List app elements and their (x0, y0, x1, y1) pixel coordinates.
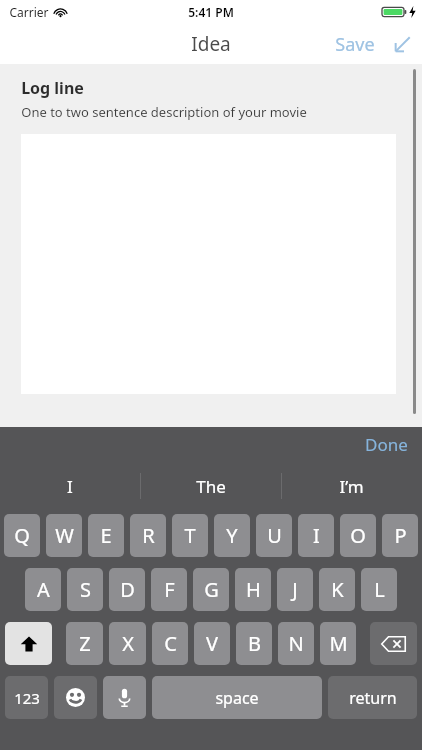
staticText: J (292, 576, 298, 603)
button[interactable]: E (88, 514, 124, 557)
staticText: I’m (339, 475, 364, 498)
button[interactable]: L (361, 568, 397, 611)
button[interactable]: space (152, 676, 322, 719)
staticText: Done (365, 433, 408, 456)
button[interactable]: A (25, 568, 61, 611)
button[interactable]: F (151, 568, 187, 611)
button[interactable]: return (328, 676, 417, 719)
button[interactable]: P (382, 514, 418, 557)
staticText: I (67, 475, 73, 498)
button[interactable]: S (67, 568, 103, 611)
staticText: I (313, 522, 320, 549)
staticText: R (142, 522, 155, 549)
staticText: P (394, 522, 407, 549)
button[interactable]: D (109, 568, 145, 611)
button[interactable]: Z (66, 622, 103, 665)
staticText: B (248, 630, 261, 657)
staticText: Q (14, 522, 30, 549)
staticText: One to two sentence description of your … (21, 103, 307, 121)
staticText: E (100, 522, 112, 549)
button[interactable]: N (278, 622, 314, 665)
button[interactable]: Q (4, 514, 40, 557)
staticText: D (120, 576, 135, 603)
staticText: return (349, 687, 397, 709)
staticText: F (164, 576, 175, 603)
button[interactable]: V (194, 622, 230, 665)
button[interactable]: Emoji (54, 676, 97, 719)
button[interactable]: X (109, 622, 146, 665)
staticText: X (122, 630, 134, 657)
button[interactable]: Backspace (370, 622, 417, 665)
staticText: Idea (191, 31, 231, 57)
button[interactable]: C (152, 622, 188, 665)
staticText: S (80, 576, 91, 603)
button[interactable]: J (277, 568, 313, 611)
staticText: U (267, 522, 282, 549)
staticText: K (331, 576, 344, 603)
button[interactable]: I (0, 462, 140, 510)
button[interactable]: T (172, 514, 208, 557)
button[interactable]: R (130, 514, 166, 557)
button[interactable]: Collapse (383, 29, 422, 60)
button[interactable]: G (193, 568, 229, 611)
staticText: V (206, 630, 218, 657)
button[interactable]: U (256, 514, 292, 557)
staticText: L (374, 576, 385, 603)
button[interactable]: M (320, 622, 356, 665)
button[interactable]: K (319, 568, 355, 611)
button[interactable]: O (340, 514, 376, 557)
button[interactable]: Save (327, 26, 383, 63)
button[interactable]: B (236, 622, 272, 665)
button[interactable]: I (298, 514, 334, 557)
button[interactable]: I’m (281, 462, 422, 510)
staticText: O (350, 522, 366, 549)
staticText: M (329, 630, 348, 657)
button[interactable]: The (140, 462, 281, 510)
staticText: The (196, 475, 226, 498)
staticText: C (164, 630, 177, 657)
staticText: Log line (21, 77, 84, 99)
button[interactable]: H (235, 568, 271, 611)
staticText: N (288, 630, 304, 657)
button[interactable]: Done (351, 428, 422, 461)
staticText: A (37, 576, 50, 603)
button[interactable]: 123 (5, 676, 48, 719)
staticText: Save (335, 32, 375, 57)
staticText: Z (79, 630, 91, 657)
staticText: G (204, 576, 219, 603)
staticText: 123 (14, 688, 40, 708)
button[interactable]: Y (214, 514, 250, 557)
staticText: W (55, 522, 74, 549)
staticText: T (184, 522, 196, 549)
button[interactable]: Shift (5, 622, 52, 665)
staticText: Y (226, 522, 238, 549)
button[interactable]: Dictation (103, 676, 146, 719)
staticText: H (246, 576, 261, 603)
staticText: 5:41 PM (188, 4, 234, 20)
button[interactable]: W (46, 514, 82, 557)
staticText: Carrier (9, 4, 49, 20)
staticText: space (215, 687, 259, 709)
